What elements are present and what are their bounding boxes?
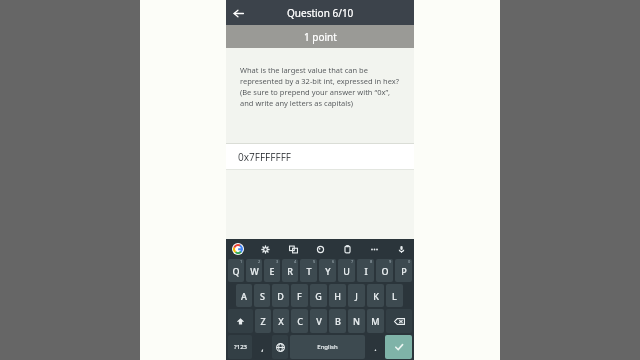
- staticText: X: [278, 315, 284, 327]
- staticText: F: [297, 290, 302, 302]
- staticText: D: [277, 290, 284, 302]
- staticText: 8: [370, 259, 373, 264]
- button[interactable]: R: [282, 259, 298, 282]
- button[interactable]: S: [254, 284, 270, 307]
- button[interactable]: ,: [254, 335, 270, 359]
- button[interactable]: L: [386, 284, 403, 307]
- button[interactable]: Settings: [258, 242, 272, 256]
- staticText: 2: [258, 259, 261, 264]
- staticText: 0: [408, 259, 411, 264]
- button[interactable]: F: [291, 284, 308, 307]
- staticText: B: [335, 315, 341, 327]
- staticText: ?123: [234, 343, 247, 351]
- button[interactable]: ?123: [228, 335, 252, 359]
- staticText: 3: [276, 259, 279, 264]
- staticText: I: [364, 265, 368, 277]
- staticText: N: [353, 315, 360, 327]
- button[interactable]: W: [246, 259, 262, 282]
- button[interactable]: O: [376, 259, 393, 282]
- button[interactable]: C: [291, 309, 308, 333]
- button[interactable]: T: [300, 259, 317, 282]
- staticText: E: [269, 265, 275, 277]
- staticText: What is the largest value that can be re…: [240, 65, 402, 108]
- button[interactable]: H: [329, 284, 346, 307]
- staticText: S: [260, 290, 265, 302]
- button[interactable]: Backspace: [386, 309, 412, 333]
- button[interactable]: Voice input: [394, 242, 408, 256]
- staticText: 1: [240, 259, 243, 264]
- staticText: Z: [260, 315, 266, 327]
- staticText: .: [374, 341, 377, 353]
- staticText: Question 6/10: [287, 6, 354, 20]
- staticText: Y: [325, 265, 331, 277]
- button[interactable]: Q: [228, 259, 244, 282]
- button[interactable]: Change language: [272, 335, 288, 359]
- button[interactable]: Stickers: [313, 242, 327, 256]
- button[interactable]: Clipboard: [340, 242, 354, 256]
- button[interactable]: V: [310, 309, 327, 333]
- button[interactable]: English: [290, 335, 365, 359]
- button[interactable]: X: [273, 309, 289, 333]
- button[interactable]: Z: [255, 309, 271, 333]
- button[interactable]: Google: [232, 243, 244, 255]
- staticText: R: [287, 265, 293, 277]
- staticText: L: [392, 290, 397, 302]
- button[interactable]: U: [338, 259, 355, 282]
- staticText: P: [401, 265, 407, 277]
- staticText: 1 point: [304, 30, 337, 44]
- staticText: C: [297, 315, 303, 327]
- staticText: ,: [261, 341, 264, 353]
- button[interactable]: E: [264, 259, 280, 282]
- button[interactable]: Y: [319, 259, 336, 282]
- button[interactable]: .: [367, 335, 383, 359]
- staticText: 5: [313, 259, 316, 264]
- button[interactable]: I: [357, 259, 374, 282]
- button[interactable]: 0x7FFFFFFF: [226, 144, 414, 169]
- button[interactable]: J: [348, 284, 365, 307]
- staticText: A: [241, 290, 247, 302]
- staticText: U: [343, 265, 350, 277]
- button[interactable]: Enter: [385, 335, 412, 359]
- button[interactable]: Back: [226, 1, 250, 25]
- staticText: H: [334, 290, 341, 302]
- staticText: 0x7FFFFFFF: [238, 150, 292, 164]
- staticText: W: [250, 265, 259, 277]
- staticText: 6: [332, 259, 335, 264]
- staticText: English: [317, 343, 338, 351]
- staticText: 4: [294, 259, 297, 264]
- button[interactable]: P: [395, 259, 412, 282]
- staticText: K: [373, 290, 379, 302]
- staticText: G: [315, 290, 322, 302]
- button[interactable]: D: [272, 284, 289, 307]
- button[interactable]: K: [367, 284, 384, 307]
- staticText: Q: [232, 265, 240, 277]
- button[interactable]: B: [329, 309, 346, 333]
- staticText: 7: [351, 259, 354, 264]
- staticText: V: [316, 315, 322, 327]
- button[interactable]: More options: [367, 242, 381, 256]
- button[interactable]: M: [367, 309, 384, 333]
- button[interactable]: N: [348, 309, 365, 333]
- button[interactable]: G: [310, 284, 327, 307]
- button[interactable]: A: [236, 284, 252, 307]
- staticText: M: [371, 315, 380, 327]
- button[interactable]: Translate: [286, 242, 300, 256]
- staticText: O: [381, 265, 389, 277]
- staticText: 9: [389, 259, 392, 264]
- button[interactable]: Shift: [228, 309, 253, 333]
- staticText: T: [306, 265, 312, 277]
- staticText: J: [355, 290, 358, 302]
